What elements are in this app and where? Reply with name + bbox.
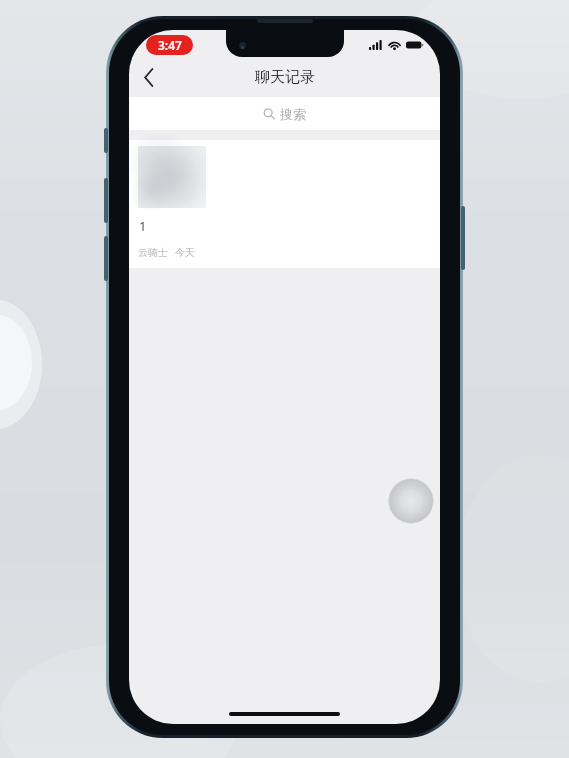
- button[interactable]: 搜索: [129, 97, 440, 130]
- button[interactable]: 1: [129, 140, 440, 268]
- staticText: 1: [139, 217, 147, 235]
- staticText: 搜索: [280, 106, 306, 122]
- button[interactable]: Assistive touch: [388, 478, 434, 524]
- button[interactable]: Back: [129, 60, 169, 94]
- staticText: 3:47: [158, 37, 182, 53]
- staticText: 今天: [175, 246, 195, 259]
- staticText: 云骑士: [138, 246, 168, 259]
- staticText: 聊天记录: [255, 68, 315, 87]
